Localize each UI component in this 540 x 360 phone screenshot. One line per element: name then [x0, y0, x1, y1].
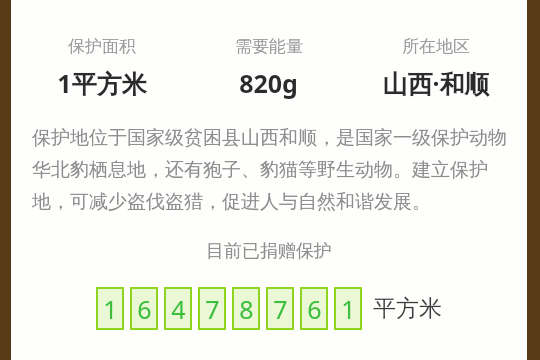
- staticText: 4: [171, 292, 186, 326]
- staticText: 1: [103, 292, 118, 326]
- button[interactable]: 6: [130, 287, 158, 330]
- staticText: 820g: [239, 66, 298, 100]
- staticText: 地，可减少盗伐盗猎，促进人与自然和谐发展。: [32, 190, 431, 214]
- staticText: 山西·和顺: [382, 66, 490, 100]
- button[interactable]: 6: [300, 287, 328, 330]
- staticText: 1: [341, 292, 356, 326]
- staticText: 保护地位于国家级贫困县山西和顺，是国家一级保护动物: [32, 126, 507, 150]
- staticText: 保护面积: [68, 36, 136, 57]
- button[interactable]: 7: [266, 287, 294, 330]
- staticText: 需要能量: [235, 36, 303, 57]
- staticText: 7: [273, 292, 288, 326]
- staticText: 7: [205, 292, 220, 326]
- button[interactable]: 7: [198, 287, 226, 330]
- staticText: 1平方米: [57, 66, 147, 100]
- button[interactable]: 保护面积: [19, 36, 185, 100]
- staticText: 所在地区: [402, 36, 470, 57]
- button[interactable]: 所在地区: [352, 36, 519, 100]
- staticText: 目前已捐赠保护: [206, 240, 332, 263]
- staticText: 6: [137, 292, 152, 326]
- button[interactable]: 4: [164, 287, 192, 330]
- staticText: 平方米: [373, 294, 442, 323]
- staticText: 6: [307, 292, 322, 326]
- button[interactable]: 需要能量: [185, 36, 352, 100]
- staticText: 8: [239, 292, 254, 326]
- staticText: 华北豹栖息地，还有狍子、豹猫等野生动物。建立保护: [32, 158, 488, 182]
- button[interactable]: 1: [334, 287, 362, 330]
- button[interactable]: 8: [232, 287, 260, 330]
- button[interactable]: 1: [96, 287, 124, 330]
